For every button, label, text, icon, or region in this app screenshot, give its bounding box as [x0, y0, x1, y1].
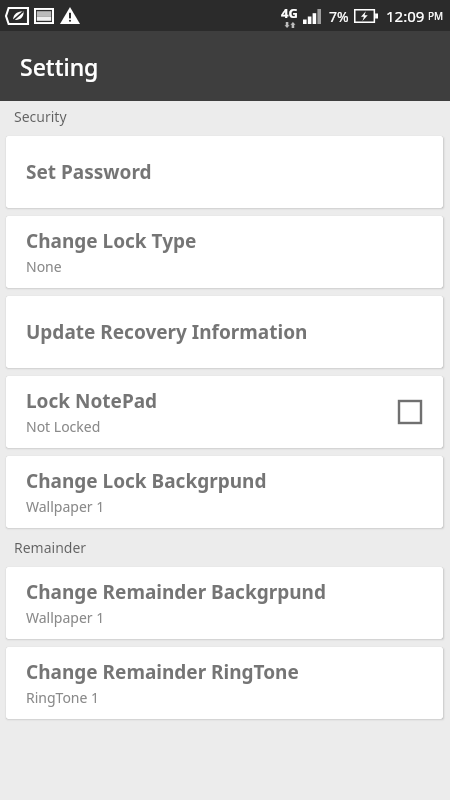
- staticText: Security: [14, 107, 67, 126]
- button[interactable]: Lock NotePad toggle: [393, 395, 427, 429]
- staticText: Wallpaper 1: [26, 497, 105, 516]
- staticText: 12:09: [386, 6, 425, 26]
- button[interactable]: Change Lock Backgrpund: [6, 456, 443, 528]
- staticText: Remainder: [14, 538, 87, 557]
- button[interactable]: Change Remainder Backgrpund: [6, 567, 443, 639]
- button[interactable]: Set Password: [6, 136, 443, 208]
- staticText: Change Remainder Backgrpund: [26, 579, 326, 605]
- staticText: Wallpaper 1: [26, 608, 105, 627]
- button[interactable]: Lock NotePad: [6, 376, 443, 448]
- button[interactable]: Change Remainder RingTone: [6, 647, 443, 719]
- staticText: Change Remainder RingTone: [26, 659, 299, 685]
- staticText: Set Password: [26, 159, 152, 185]
- staticText: 7%: [329, 7, 349, 26]
- staticText: None: [26, 257, 62, 276]
- staticText: Change Lock Backgrpund: [26, 468, 267, 494]
- staticText: Not Locked: [26, 417, 101, 436]
- button[interactable]: Change Lock Type: [6, 216, 443, 288]
- staticText: Lock NotePad: [26, 388, 158, 414]
- staticText: PM: [428, 9, 444, 23]
- staticText: Setting: [20, 51, 99, 82]
- button[interactable]: Update Recovery Information: [6, 296, 443, 368]
- staticText: Change Lock Type: [26, 228, 197, 254]
- staticText: Update Recovery Information: [26, 319, 308, 345]
- staticText: 4G: [281, 4, 298, 22]
- staticText: RingTone 1: [26, 688, 100, 707]
